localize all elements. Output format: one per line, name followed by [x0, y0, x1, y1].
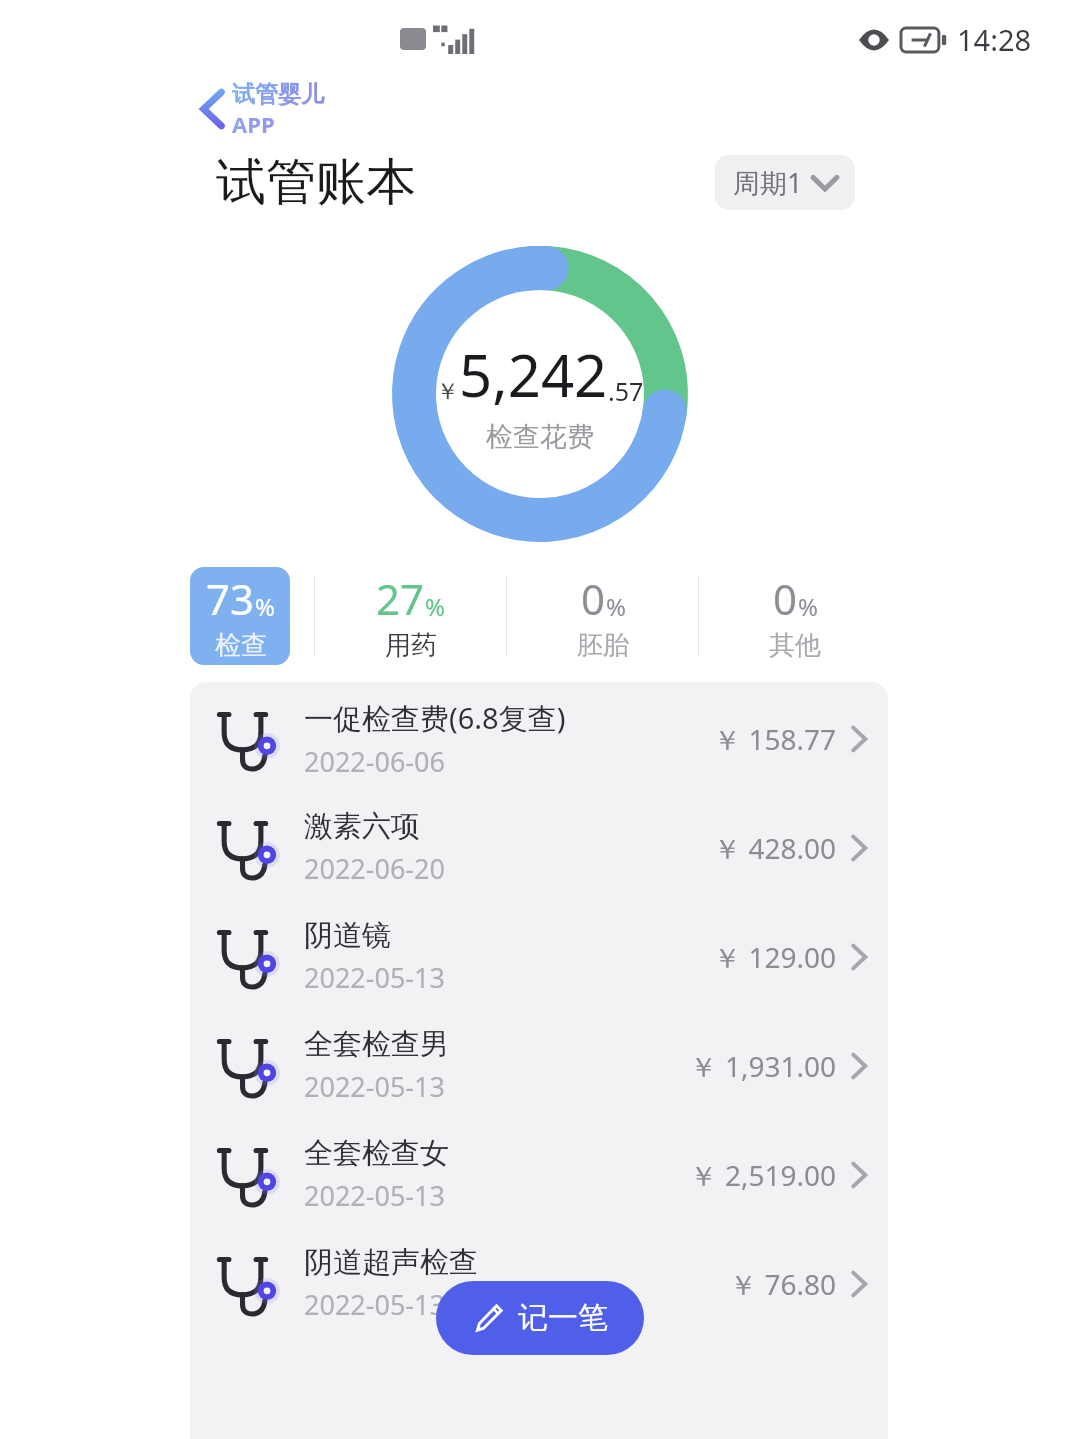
staticText: 27: [376, 570, 425, 627]
staticText: ￥ 158.77: [713, 720, 836, 758]
staticText: ￥ 76.80: [729, 1265, 836, 1303]
staticText: 一促检查费(6.8复查): [304, 698, 566, 738]
staticText: 5,242: [459, 335, 608, 414]
staticText: 检查: [215, 629, 267, 662]
button[interactable]: 激素六项: [190, 793, 888, 902]
staticText: 阴道镜: [304, 917, 391, 954]
staticText: 用药: [385, 629, 437, 662]
staticText: 2022-05-13: [304, 959, 445, 996]
staticText: 胚胎: [577, 629, 629, 662]
staticText: 激素六项: [304, 808, 420, 845]
staticText: ￥ 129.00: [713, 938, 836, 976]
staticText: ￥ 428.00: [713, 829, 836, 867]
staticText: 全套检查男: [304, 1026, 449, 1063]
staticText: 全套检查女: [304, 1135, 449, 1172]
button[interactable]: 全套检查女: [190, 1120, 888, 1229]
staticText: 2022-05-13: [304, 1177, 445, 1214]
staticText: .57: [608, 374, 644, 408]
staticText: 2022-06-06: [304, 743, 445, 780]
staticText: 0: [581, 570, 606, 627]
button[interactable]: 阴道超声检查: [190, 1229, 888, 1338]
button[interactable]: 阴道镜: [190, 902, 888, 1011]
button[interactable]: 73: [190, 567, 290, 665]
staticText: ￥ 1,931.00: [689, 1047, 836, 1085]
staticText: 试管账本: [216, 151, 416, 214]
button[interactable]: 记一笔: [436, 1281, 644, 1355]
button[interactable]: 0: [699, 566, 890, 666]
staticText: 0: [773, 570, 798, 627]
staticText: %: [606, 590, 626, 623]
staticText: APP: [232, 109, 275, 139]
button[interactable]: 全套检查男: [190, 1011, 888, 1120]
staticText: 检查花费: [486, 420, 594, 454]
staticText: 其他: [769, 629, 821, 662]
button[interactable]: Back: [200, 78, 324, 140]
staticText: 2022-05-13: [304, 1068, 445, 1105]
staticText: 2022-05-13: [304, 1286, 445, 1323]
button[interactable]: 一促检查费(6.8复查): [190, 684, 888, 793]
button[interactable]: 周期1: [715, 155, 855, 210]
button[interactable]: 27: [315, 566, 506, 666]
staticText: %: [425, 590, 445, 623]
staticText: %: [798, 590, 818, 623]
staticText: ￥ 2,519.00: [689, 1156, 836, 1194]
staticText: 阴道超声检查: [304, 1244, 478, 1281]
staticText: %: [255, 590, 275, 623]
staticText: 73: [206, 570, 255, 627]
staticText: 周期1: [733, 164, 803, 201]
staticText: ￥: [436, 377, 459, 406]
staticText: 试管婴儿: [232, 80, 324, 109]
button[interactable]: 0: [507, 566, 698, 666]
staticText: 记一笔: [518, 1299, 608, 1337]
staticText: 14:28: [957, 20, 1032, 59]
staticText: 2022-06-20: [304, 850, 445, 887]
